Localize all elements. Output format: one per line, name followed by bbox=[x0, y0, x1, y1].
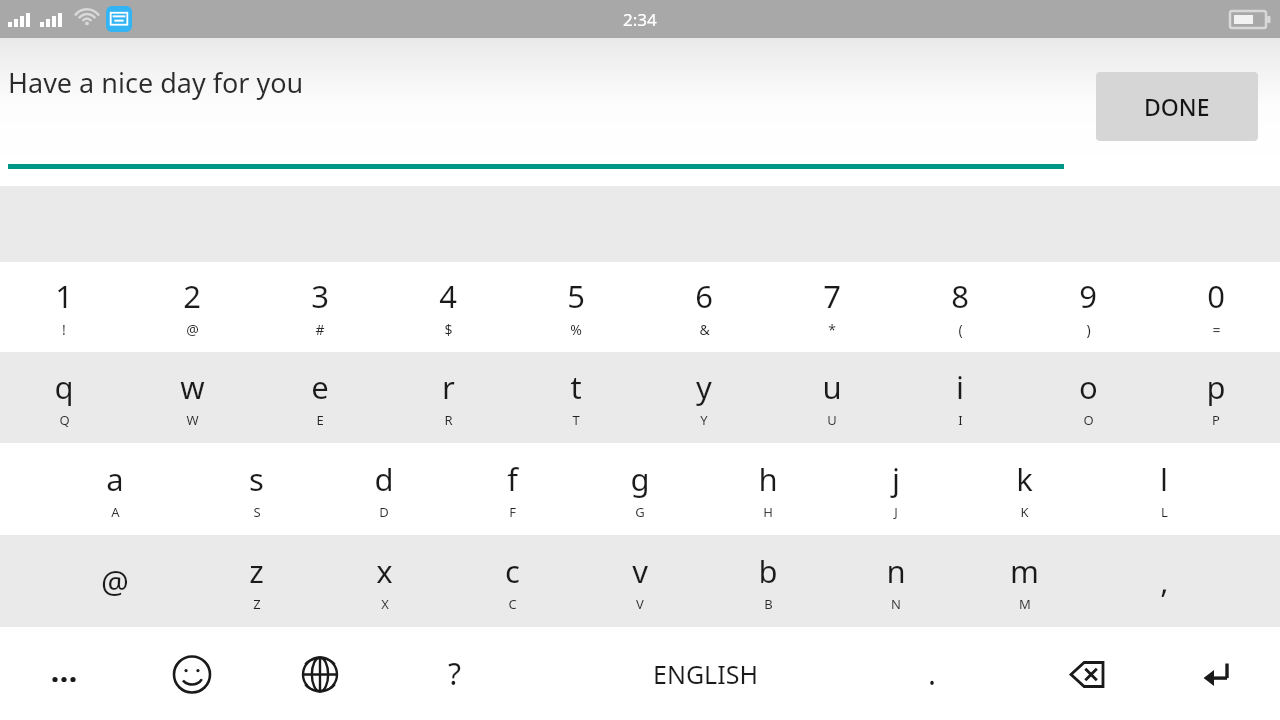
button[interactable]: 6 bbox=[640, 262, 768, 352]
staticText: p bbox=[1206, 366, 1226, 408]
staticText: h bbox=[758, 458, 778, 500]
button[interactable]: c bbox=[448, 535, 576, 627]
button[interactable]: . bbox=[868, 627, 996, 720]
button[interactable]: i bbox=[896, 352, 1024, 443]
staticText: ! bbox=[62, 320, 66, 339]
staticText: J bbox=[894, 503, 898, 521]
button[interactable]: 1 bbox=[0, 262, 128, 352]
staticText: # bbox=[315, 320, 325, 339]
button[interactable]: DONE bbox=[1096, 72, 1258, 141]
button[interactable]: f bbox=[448, 443, 576, 535]
button[interactable]: b bbox=[704, 535, 832, 627]
staticText: s bbox=[249, 458, 264, 500]
button[interactable]: Change language bbox=[256, 627, 384, 720]
staticText: ( bbox=[958, 320, 963, 339]
staticText: 8 bbox=[951, 275, 969, 317]
staticText: Have a nice day for you bbox=[8, 64, 304, 101]
staticText: H bbox=[763, 503, 773, 521]
staticText: r bbox=[442, 366, 455, 408]
staticText: ? bbox=[448, 653, 462, 694]
staticText: y bbox=[696, 366, 712, 408]
button[interactable]: u bbox=[768, 352, 896, 443]
button[interactable]: g bbox=[576, 443, 704, 535]
button[interactable]: w bbox=[128, 352, 256, 443]
staticText: 1 bbox=[55, 275, 73, 317]
button[interactable]: , bbox=[1100, 535, 1228, 627]
staticText: V bbox=[636, 595, 644, 613]
button[interactable]: Emoji bbox=[128, 627, 256, 720]
staticText: f bbox=[507, 458, 518, 500]
button[interactable]: p bbox=[1152, 352, 1280, 443]
button[interactable]: d bbox=[320, 443, 448, 535]
button[interactable]: r bbox=[384, 352, 512, 443]
button[interactable]: 0 bbox=[1152, 262, 1280, 352]
staticText: u bbox=[822, 366, 842, 408]
button[interactable]: m bbox=[960, 535, 1088, 627]
staticText: e bbox=[311, 366, 329, 408]
button[interactable]: Enter bbox=[1152, 627, 1280, 720]
button[interactable]: j bbox=[832, 443, 960, 535]
button[interactable]: z bbox=[192, 535, 320, 627]
button[interactable]: 4 bbox=[384, 262, 512, 352]
button[interactable]: y bbox=[640, 352, 768, 443]
button[interactable]: n bbox=[832, 535, 960, 627]
staticText: a bbox=[106, 458, 124, 500]
button[interactable]: Symbols bbox=[0, 627, 128, 720]
staticText: G bbox=[635, 503, 645, 521]
button[interactable]: 3 bbox=[256, 262, 384, 352]
staticText: A bbox=[111, 503, 120, 521]
staticText: 2:34 bbox=[623, 8, 657, 31]
staticText: R bbox=[444, 411, 453, 429]
button[interactable]: e bbox=[256, 352, 384, 443]
staticText: L bbox=[1161, 503, 1168, 521]
staticText: N bbox=[891, 595, 901, 613]
staticText: @ bbox=[186, 320, 199, 339]
button[interactable]: q bbox=[0, 352, 128, 443]
button[interactable]: x bbox=[320, 535, 448, 627]
button[interactable]: @ bbox=[51, 535, 179, 627]
staticText: U bbox=[827, 411, 837, 429]
staticText: ENGLISH bbox=[653, 657, 758, 691]
staticText: v bbox=[632, 550, 648, 592]
staticText: E bbox=[316, 411, 324, 429]
staticText: DONE bbox=[1144, 91, 1210, 122]
staticText: . bbox=[928, 653, 937, 694]
button[interactable]: v bbox=[576, 535, 704, 627]
button[interactable]: k bbox=[960, 443, 1088, 535]
button[interactable]: l bbox=[1100, 443, 1228, 535]
staticText: = bbox=[1212, 320, 1221, 339]
button[interactable]: 7 bbox=[768, 262, 896, 352]
staticText: I bbox=[958, 411, 963, 429]
staticText: z bbox=[249, 550, 264, 592]
staticText: O bbox=[1083, 411, 1094, 429]
staticText: w bbox=[180, 366, 205, 408]
staticText: T bbox=[572, 411, 580, 429]
staticText: 4 bbox=[439, 275, 457, 317]
button[interactable]: o bbox=[1024, 352, 1152, 443]
staticText: t bbox=[570, 366, 582, 408]
staticText: d bbox=[374, 458, 394, 500]
button[interactable]: a bbox=[51, 443, 179, 535]
button[interactable]: 8 bbox=[896, 262, 1024, 352]
staticText: i bbox=[956, 366, 964, 408]
staticText: Z bbox=[253, 595, 261, 613]
button[interactable]: s bbox=[192, 443, 320, 535]
button[interactable]: ? bbox=[391, 627, 519, 720]
staticText: x bbox=[376, 550, 393, 592]
button[interactable]: 5 bbox=[512, 262, 640, 352]
staticText: j bbox=[892, 458, 900, 500]
staticText: $ bbox=[444, 320, 453, 339]
button[interactable]: 9 bbox=[1024, 262, 1152, 352]
button[interactable]: ENGLISH bbox=[520, 627, 890, 720]
staticText: ) bbox=[1086, 320, 1091, 339]
button[interactable]: 2 bbox=[128, 262, 256, 352]
staticText: o bbox=[1079, 366, 1098, 408]
staticText: 0 bbox=[1207, 275, 1225, 317]
button[interactable]: h bbox=[704, 443, 832, 535]
staticText: 2 bbox=[183, 275, 201, 317]
staticText: 7 bbox=[823, 275, 841, 317]
button[interactable]: Backspace bbox=[1024, 627, 1152, 720]
button[interactable]: t bbox=[512, 352, 640, 443]
staticText: m bbox=[1010, 550, 1039, 592]
